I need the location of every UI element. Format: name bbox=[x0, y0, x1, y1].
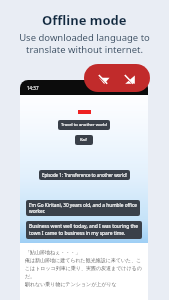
button[interactable]: Offline: no wifi, no cellular bbox=[84, 64, 150, 92]
staticText: Kai! bbox=[80, 137, 88, 143]
staticText: Travel to another world bbox=[61, 122, 107, 128]
staticText: Use downloaded language to translate wit… bbox=[19, 31, 150, 55]
staticText: Offline mode bbox=[42, 11, 127, 29]
staticText: I'm Go Kiritani, 30 years old, and a hum… bbox=[29, 202, 137, 214]
staticText: Episode 1: Transference to another world… bbox=[42, 172, 127, 178]
staticText: Business went well today, and I was tour… bbox=[29, 223, 139, 237]
staticText: 「鮎山跡地ねぇ・・・」 俺は新山跡地に建てられた観光施設に来ていた、ここはトロッ… bbox=[25, 249, 143, 288]
staticText: 14:37 bbox=[27, 85, 39, 91]
